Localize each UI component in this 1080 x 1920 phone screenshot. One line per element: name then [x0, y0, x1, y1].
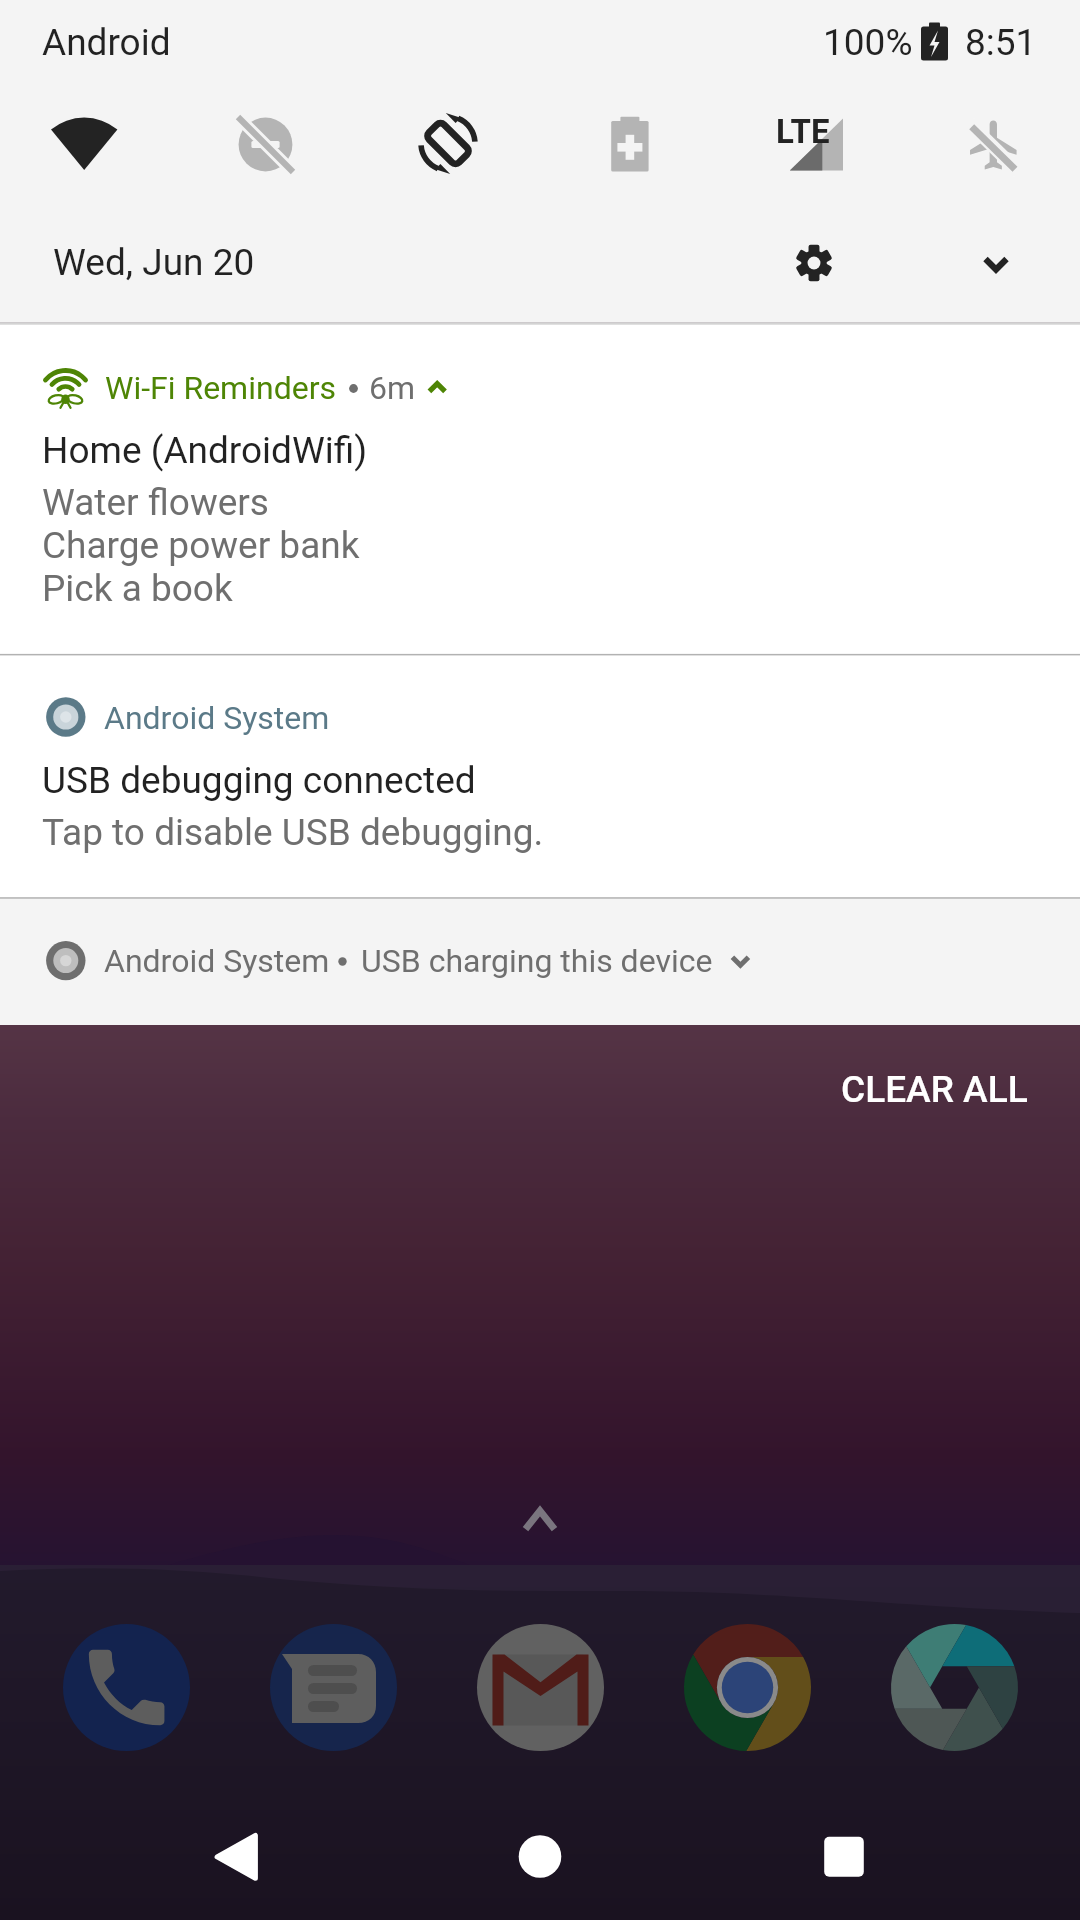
button[interactable]: Settings — [784, 233, 844, 293]
staticText: Tap to disable USB debugging. — [42, 811, 544, 854]
staticText: Android System — [104, 942, 330, 980]
button[interactable]: Expand notification — [716, 940, 766, 986]
staticText: Android System — [104, 699, 330, 737]
button[interactable]: CLEAR ALL — [795, 1041, 1050, 1135]
button[interactable]: Gmail — [477, 1624, 604, 1751]
button[interactable]: Collapse quick settings — [966, 234, 1026, 294]
staticText: Wed, Jun 20 — [53, 241, 255, 284]
staticText: Water flowers — [42, 481, 269, 524]
button[interactable]: Collapse notification — [420, 372, 458, 404]
button[interactable]: Auto rotate — [412, 108, 484, 182]
button[interactable] — [0, 655, 1080, 897]
button[interactable]: Battery charging — [918, 16, 952, 68]
staticText: USB debugging connected — [42, 759, 476, 802]
button[interactable]: Camera — [891, 1624, 1018, 1751]
button[interactable]: Wed, Jun 20 — [36, 228, 356, 298]
staticText: LTE — [776, 112, 830, 151]
staticText: 6m — [369, 369, 416, 407]
button[interactable]: Open app drawer — [505, 1495, 575, 1545]
staticText: 8:51 — [965, 21, 1037, 64]
button[interactable]: Back — [200, 1820, 280, 1895]
staticText: Pick a book — [42, 567, 233, 610]
staticText: Android — [42, 21, 171, 64]
button[interactable]: Recent apps — [804, 1820, 884, 1895]
button[interactable]: Mobile data LTE — [770, 110, 850, 180]
staticText: Wi-Fi Reminders — [105, 369, 336, 407]
button[interactable] — [0, 325, 1080, 654]
button[interactable]: Chrome — [684, 1624, 811, 1751]
button[interactable]: Messages — [270, 1624, 397, 1751]
button[interactable]: Battery saver — [596, 110, 668, 180]
staticText: USB charging this device — [361, 942, 713, 980]
button[interactable] — [0, 899, 1080, 1025]
staticText: 100% — [823, 21, 913, 64]
button[interactable]: Do not disturb — [230, 110, 302, 180]
button[interactable]: Wi-Fi — [48, 110, 120, 180]
staticText: Charge power bank — [42, 524, 360, 567]
staticText: CLEAR ALL — [841, 1068, 1028, 1111]
button[interactable]: Home — [500, 1820, 580, 1895]
button[interactable]: Airplane mode — [958, 106, 1034, 184]
button[interactable]: Phone — [63, 1624, 190, 1751]
staticText: Home (AndroidWifi) — [42, 429, 368, 472]
